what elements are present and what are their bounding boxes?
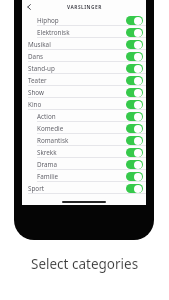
button[interactable]: Dans xyxy=(22,50,146,62)
button[interactable]: Notification toggle, on xyxy=(126,76,143,85)
staticText: Romantisk xyxy=(37,136,69,145)
button[interactable]: Notification toggle, on xyxy=(126,160,143,169)
button[interactable]: Notification toggle, on xyxy=(126,52,143,61)
staticText: Hiphop xyxy=(37,16,59,25)
button[interactable]: Komedie xyxy=(22,122,146,134)
staticText: Drama xyxy=(37,160,58,169)
button[interactable]: Skrekk xyxy=(22,146,146,158)
button[interactable]: Notification toggle, on xyxy=(126,100,143,109)
button[interactable]: Notification toggle, on xyxy=(126,184,143,193)
button[interactable]: Back xyxy=(23,1,35,13)
button[interactable]: Romantisk xyxy=(22,134,146,146)
staticText: Action xyxy=(37,112,56,121)
button[interactable]: Notification toggle, on xyxy=(126,124,143,133)
button[interactable]: Notification toggle, on xyxy=(126,172,143,181)
button[interactable]: Notification toggle, on xyxy=(126,136,143,145)
button[interactable]: Notification toggle, on xyxy=(126,112,143,121)
button[interactable]: Kino xyxy=(22,98,146,110)
staticText: Musikal xyxy=(28,40,51,49)
button[interactable]: Notification toggle, on xyxy=(126,148,143,157)
staticText: Kino xyxy=(28,100,42,109)
button[interactable]: Show xyxy=(22,86,146,98)
staticText: Familie xyxy=(37,172,59,181)
staticText: Elektronisk xyxy=(37,28,70,37)
staticText: Skrekk xyxy=(37,148,57,157)
staticText: VARSLINGER xyxy=(67,4,102,11)
button[interactable]: Familie xyxy=(22,170,146,182)
button[interactable]: Notification toggle, on xyxy=(126,88,143,97)
staticText: Show xyxy=(28,88,44,97)
button[interactable]: Notification toggle, on xyxy=(126,28,143,37)
button[interactable]: Notification toggle, on xyxy=(126,64,143,73)
button[interactable]: Teater xyxy=(22,74,146,86)
staticText: Select categories xyxy=(31,255,139,273)
button[interactable]: Elektronisk xyxy=(22,26,146,38)
button[interactable]: Notification toggle, on xyxy=(126,40,143,49)
staticText: Teater xyxy=(28,76,47,85)
button[interactable]: Musikal xyxy=(22,38,146,50)
staticText: Stand-up xyxy=(28,64,55,73)
staticText: Sport xyxy=(28,184,45,193)
button[interactable]: Notification toggle, on xyxy=(126,16,143,25)
button[interactable]: Action xyxy=(22,110,146,122)
staticText: Dans xyxy=(28,52,44,61)
button[interactable]: Hiphop xyxy=(22,14,146,26)
staticText: Komedie xyxy=(37,124,64,133)
button[interactable]: Stand-up xyxy=(22,62,146,74)
button[interactable]: Sport xyxy=(22,182,146,194)
button[interactable]: Drama xyxy=(22,158,146,170)
